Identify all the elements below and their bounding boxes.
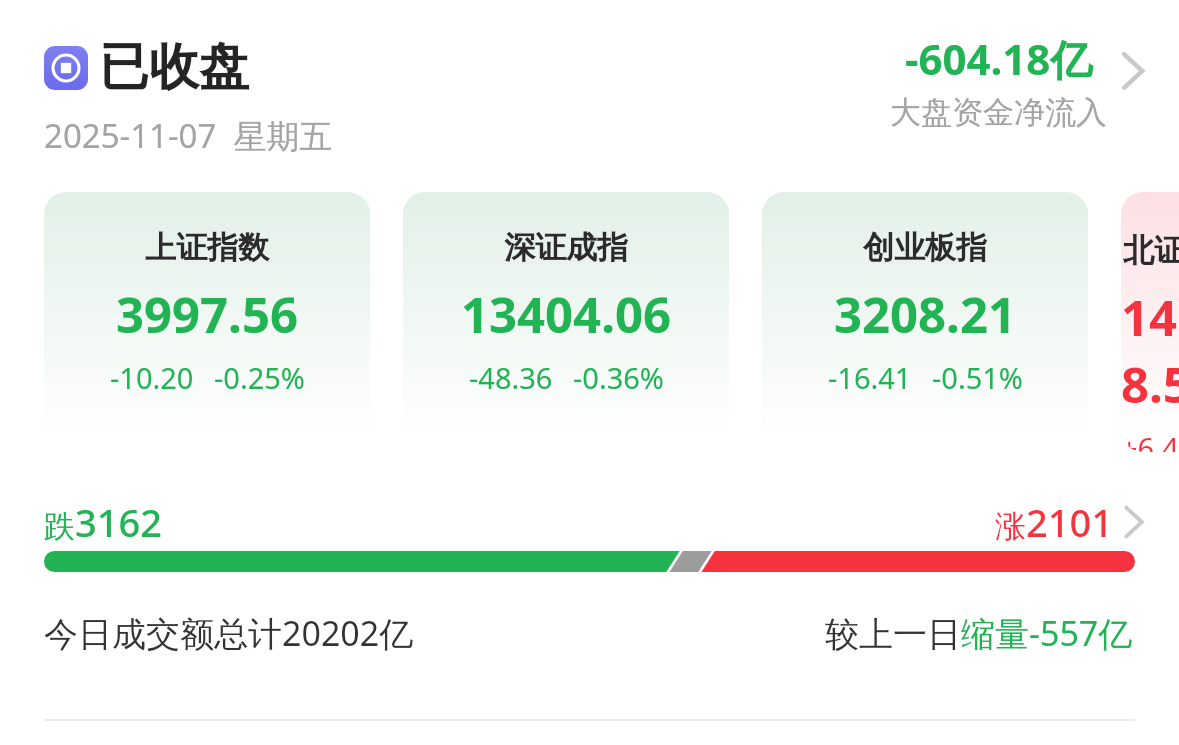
button[interactable]: -604.18亿 <box>886 30 1155 132</box>
staticText: 涨2101 <box>995 496 1113 548</box>
button[interactable]: 深证成指 <box>403 192 729 452</box>
button[interactable]: 上证指数 <box>44 192 370 452</box>
staticText: +6.41 <box>1121 428 1179 452</box>
staticText: 2025-11-07 星期五 <box>44 113 333 158</box>
button[interactable]: 创业板指 <box>762 192 1088 452</box>
staticText: -0.51% <box>932 358 1023 397</box>
button[interactable]: 跌3162 <box>0 496 1179 548</box>
staticText: 13404.06 <box>461 281 671 348</box>
staticText: 北证50 <box>1123 228 1179 270</box>
other: 查看大盘资金净流入 <box>1115 53 1151 89</box>
staticText: 深证成指 <box>504 228 628 267</box>
staticText: -10.20 <box>110 358 194 397</box>
staticText: 创业板指 <box>863 228 987 267</box>
staticText: 今日成交额总计20202亿 <box>44 610 414 656</box>
staticText: 大盘资金净流入 <box>890 93 1107 132</box>
staticText: 1418.52 <box>1121 284 1179 418</box>
staticText: 较上一日缩量-557亿 <box>825 610 1133 656</box>
staticText: -48.36 <box>469 358 553 397</box>
staticText: -0.25% <box>214 358 305 397</box>
staticText: -604.18亿 <box>905 30 1093 87</box>
staticText: -0.36% <box>573 358 664 397</box>
staticText: 3208.21 <box>834 281 1016 348</box>
staticText: 已收盘 <box>99 36 249 99</box>
button[interactable]: 北证50 <box>1121 192 1179 452</box>
other: 查看涨跌家数 <box>1119 507 1149 537</box>
staticText: -16.41 <box>828 358 912 397</box>
staticText: 上证指数 <box>145 228 269 267</box>
staticText: 跌3162 <box>44 496 162 548</box>
staticText: 3997.56 <box>116 281 298 348</box>
